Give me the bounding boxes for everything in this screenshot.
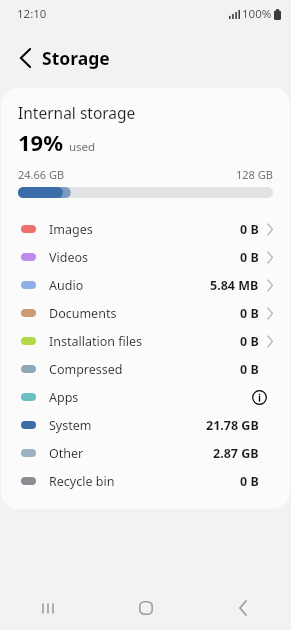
staticText: Internal storage	[18, 102, 136, 123]
button[interactable]: Installation files	[1, 327, 290, 355]
staticText: 0 B	[240, 361, 259, 378]
button[interactable]: Recents	[0, 586, 97, 630]
staticText: 2.87 GB	[213, 445, 259, 462]
staticText: 0 B	[240, 305, 259, 322]
button[interactable]: Videos	[1, 243, 290, 271]
staticText: Audio	[49, 277, 84, 294]
staticText: Other	[49, 445, 84, 462]
button[interactable]: Documents	[1, 299, 290, 327]
staticText: 0 B	[240, 333, 259, 350]
staticText: 0 B	[240, 249, 259, 266]
button[interactable]: Back	[8, 41, 42, 75]
staticText: Installation files	[49, 333, 143, 350]
staticText: Videos	[49, 249, 89, 266]
button[interactable]: Recycle bin	[1, 467, 290, 495]
staticText: 128 GB	[236, 167, 273, 182]
staticText: System	[49, 417, 92, 434]
staticText: Storage	[42, 46, 110, 70]
button[interactable]: Other	[1, 439, 290, 467]
staticText: 5.84 MB	[210, 277, 259, 294]
staticText: 0 B	[240, 221, 259, 238]
staticText: Compressed	[49, 361, 123, 378]
staticText: 24.66 GB	[18, 167, 65, 182]
button[interactable]: Audio	[1, 271, 290, 299]
button[interactable]: Compressed	[1, 355, 290, 383]
staticText: used	[69, 139, 96, 155]
staticText: 0 B	[240, 473, 259, 490]
button[interactable]: Apps storage info	[249, 387, 269, 407]
staticText: 12:10	[17, 6, 47, 22]
staticText: Apps	[49, 389, 79, 406]
staticText: 21.78 GB	[206, 417, 259, 434]
staticText: 100%	[242, 6, 272, 22]
staticText: Images	[49, 221, 93, 238]
button[interactable]: Images	[1, 215, 290, 243]
button[interactable]: System	[1, 411, 290, 439]
staticText: 19%	[18, 127, 64, 157]
staticText: Recycle bin	[49, 473, 115, 490]
button[interactable]: Back	[194, 586, 291, 630]
button[interactable]: Apps	[1, 383, 290, 411]
button[interactable]: Home	[97, 586, 194, 630]
staticText: Documents	[49, 305, 117, 322]
